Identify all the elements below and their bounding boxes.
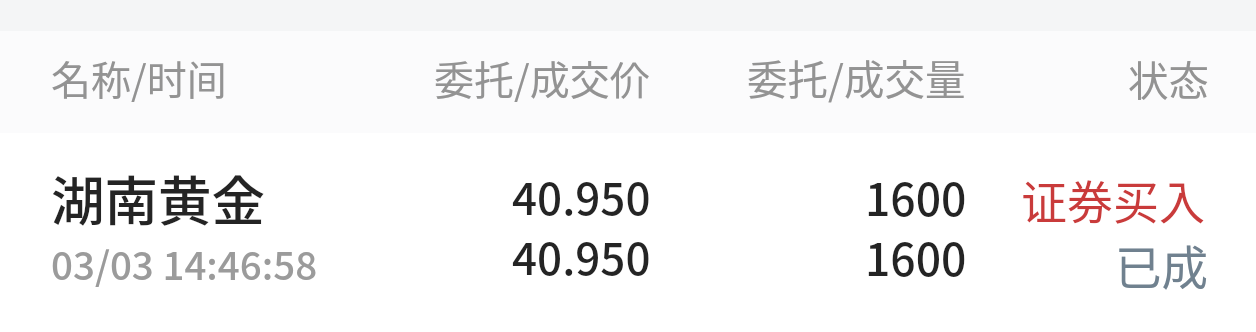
staticText: 名称/时间 xyxy=(51,49,227,107)
staticText: 已成 xyxy=(1115,231,1208,298)
staticText: 1600 xyxy=(865,164,967,228)
staticText: 状态 xyxy=(1128,49,1209,108)
staticText: 03/03 14:46:58 xyxy=(51,235,318,291)
staticText: 湖南黄金 xyxy=(51,159,265,236)
button[interactable]: 湖南黄金 xyxy=(0,133,1256,332)
staticText: 1600 xyxy=(865,224,967,288)
staticText: 40.950 xyxy=(512,224,651,288)
staticText: 委托/成交价 xyxy=(434,49,650,107)
staticText: 40.950 xyxy=(512,164,651,228)
staticText: 委托/成交量 xyxy=(747,48,966,107)
staticText: 证券买入 xyxy=(1021,166,1205,233)
